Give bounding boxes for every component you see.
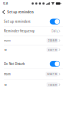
button[interactable]: Set up reminders xyxy=(0,17,63,26)
staticText: 9:00 AM xyxy=(48,39,57,42)
button[interactable]: To xyxy=(0,79,63,90)
staticText: Reminder frequency xyxy=(4,29,34,33)
staticText: From xyxy=(4,72,11,76)
button[interactable]: To xyxy=(0,45,63,54)
staticText: From xyxy=(4,39,11,42)
button[interactable]: Reminder frequency xyxy=(0,27,63,36)
staticText: 7:00 AM xyxy=(48,83,57,86)
button[interactable]: Do Not Disturb xyxy=(0,59,63,69)
staticText: Set up reminders xyxy=(7,10,33,14)
button[interactable]: From xyxy=(0,36,63,45)
staticText: To xyxy=(4,48,7,51)
staticText: 10:00 PM xyxy=(47,72,57,76)
staticText: To xyxy=(4,83,7,86)
staticText: 10:34 xyxy=(3,2,8,5)
staticText: Do Not Disturb xyxy=(4,62,25,66)
button[interactable]: Back xyxy=(0,7,7,17)
button[interactable]: From xyxy=(0,69,63,79)
staticText: 6:00 PM xyxy=(48,48,57,51)
staticText: Daily xyxy=(51,29,57,33)
staticText: Set up reminders xyxy=(4,20,30,23)
